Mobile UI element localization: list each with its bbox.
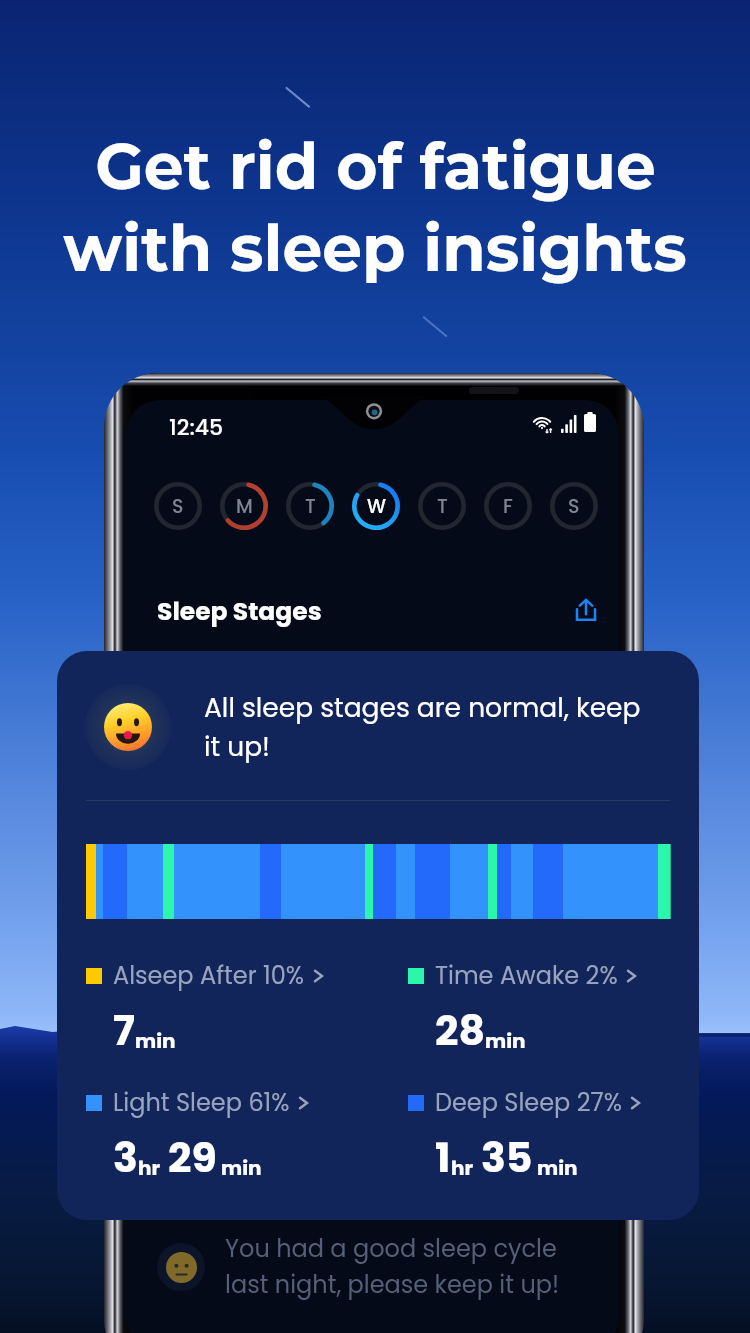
staticText: T	[437, 493, 448, 520]
button[interactable]: Share	[568, 592, 604, 628]
button[interactable]: S	[146, 474, 210, 538]
button[interactable]: M	[212, 474, 276, 538]
staticText: hr	[138, 1154, 161, 1182]
staticText: min	[485, 1027, 526, 1055]
staticText: All sleep stages are normal, keep it up!	[204, 689, 642, 765]
staticText: M	[236, 493, 253, 520]
button[interactable]: W	[344, 474, 408, 538]
staticText: F	[503, 493, 513, 520]
button[interactable]: Time Awake 2%	[408, 959, 681, 1059]
staticText: 29	[168, 1129, 217, 1186]
staticText: T	[305, 493, 316, 520]
staticText: with sleep insights	[63, 210, 687, 287]
staticText: min	[135, 1027, 176, 1055]
staticText: Get rid of fatigue	[95, 128, 656, 205]
button[interactable]: S	[542, 474, 606, 538]
staticText: 28	[435, 1002, 485, 1059]
staticText: 12:45	[169, 412, 224, 443]
staticText: hr	[451, 1154, 474, 1182]
staticText: S	[568, 493, 580, 520]
button[interactable]: F	[476, 474, 540, 538]
staticText: Sleep Stages	[157, 594, 322, 629]
staticText: Light Sleep 61%	[113, 1086, 290, 1120]
staticText: min	[221, 1154, 262, 1182]
staticText: 7	[113, 1002, 135, 1059]
button[interactable]: T	[410, 474, 474, 538]
staticText: 1	[435, 1129, 451, 1186]
button[interactable]: Deep Sleep 27%	[408, 1086, 681, 1186]
button[interactable]: Light Sleep 61%	[86, 1086, 408, 1186]
staticText: Time Awake 2%	[435, 959, 618, 993]
staticText: 35	[481, 1129, 533, 1186]
staticText: min	[537, 1154, 578, 1182]
staticText: W	[367, 493, 386, 520]
staticText: S	[172, 493, 184, 520]
staticText: Alseep After 10%	[113, 959, 305, 993]
staticText: 3	[113, 1129, 138, 1186]
button[interactable]: T	[278, 474, 342, 538]
staticText: Deep Sleep 27%	[435, 1086, 622, 1120]
staticText: You had a good sleep cycle last night, p…	[225, 1232, 589, 1302]
button[interactable]: Alseep After 10%	[86, 959, 408, 1059]
